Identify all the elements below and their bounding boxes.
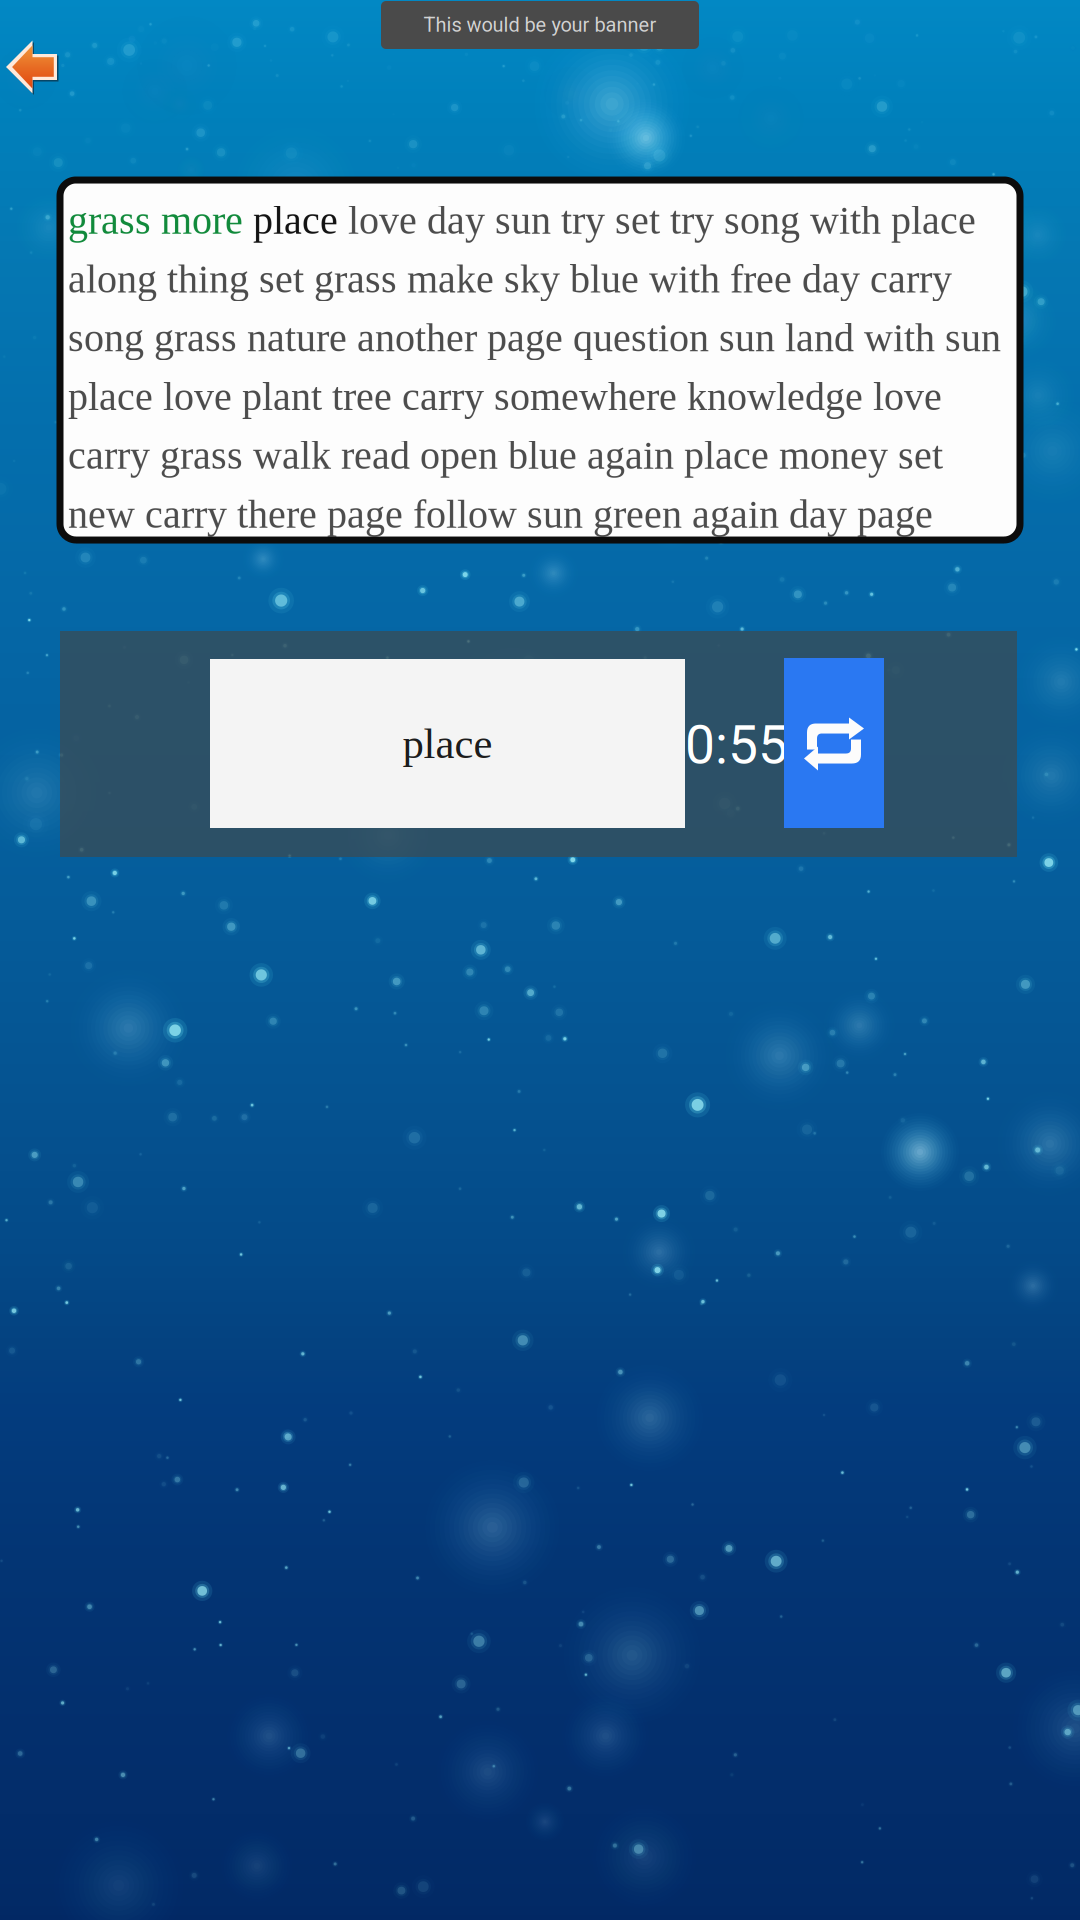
button[interactable]: place [210, 659, 685, 828]
staticText: This would be your banner [423, 13, 656, 37]
button[interactable]: This would be your banner [381, 1, 699, 49]
staticText: place [402, 720, 492, 767]
button[interactable]: Back [0, 33, 66, 101]
staticText: grass more place love day sun try set tr… [68, 198, 1001, 536]
button[interactable]: Repeat [784, 658, 884, 828]
staticText: 0:55 [685, 714, 788, 776]
